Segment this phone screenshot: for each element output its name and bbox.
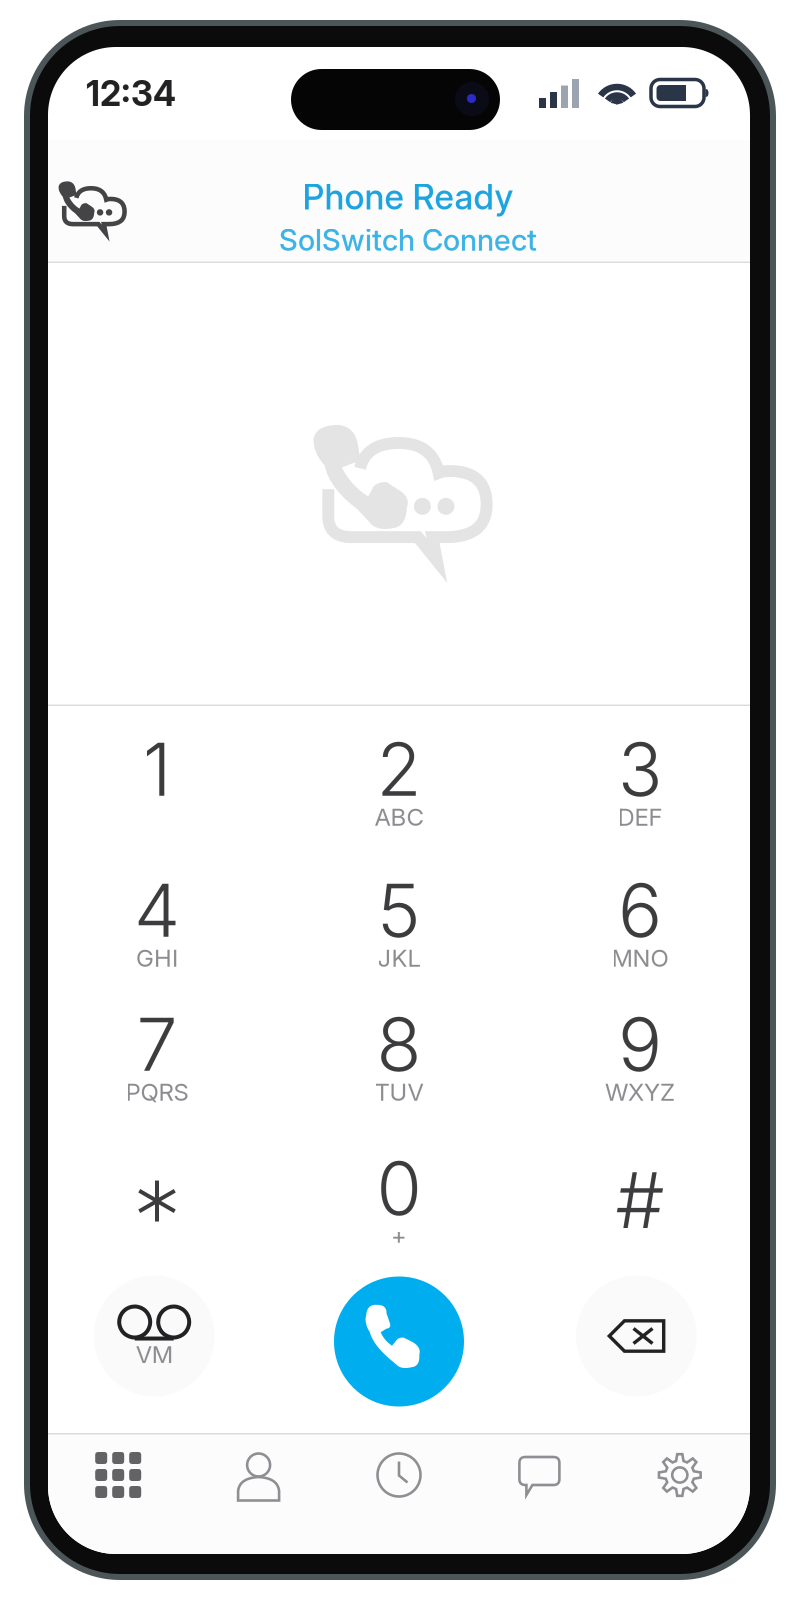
staticText: TUV [374, 1077, 423, 1106]
staticText: WXYZ [605, 1077, 675, 1106]
button[interactable] [48, 1123, 282, 1262]
button[interactable]: 3 [516, 706, 750, 845]
staticText: DEF [617, 802, 662, 831]
staticText: VM [136, 1340, 173, 1369]
staticText: GHI [136, 943, 178, 972]
button[interactable]: 1 [48, 706, 282, 845]
staticText: 3 [618, 725, 662, 813]
button[interactable]: Settings [610, 1433, 750, 1554]
button[interactable]: 9 [516, 984, 750, 1123]
button[interactable]: 6 [516, 845, 750, 984]
button[interactable]: 8 [282, 984, 516, 1123]
staticText: + [391, 1221, 407, 1250]
button[interactable]: 0 [282, 1123, 516, 1262]
button[interactable]: Call [334, 1276, 464, 1406]
button[interactable]: Keypad [48, 1433, 188, 1554]
button[interactable]: 7 [48, 984, 282, 1123]
staticText: 5 [377, 866, 421, 954]
staticText: 1 [142, 725, 171, 813]
staticText: SolSwitch Connect [279, 222, 537, 258]
button[interactable]: 5 [282, 845, 516, 984]
staticText: 8 [376, 1000, 421, 1088]
button[interactable]: Messages [469, 1433, 610, 1554]
staticText: 12:34 [86, 72, 176, 114]
button[interactable]: Contacts [188, 1433, 329, 1554]
button[interactable]: Voicemail [94, 1275, 215, 1396]
staticText: Phone Ready [302, 176, 513, 218]
button[interactable]: Recents [329, 1433, 469, 1554]
button[interactable]: SolSwitch [48, 140, 160, 263]
staticText: 6 [618, 866, 662, 954]
staticText: 0 [376, 1144, 421, 1232]
staticText: 7 [136, 1000, 177, 1088]
button[interactable]: # [516, 1123, 750, 1262]
button[interactable]: 4 [48, 845, 282, 984]
staticText: 2 [376, 725, 421, 813]
staticText: PQRS [125, 1077, 188, 1106]
staticText: ABC [374, 802, 423, 831]
staticText: 4 [134, 866, 180, 954]
button[interactable]: 2 [282, 706, 516, 845]
staticText: # [615, 1153, 664, 1247]
staticText: JKL [377, 943, 420, 972]
staticText: 9 [618, 1000, 662, 1088]
button[interactable]: Delete [576, 1275, 697, 1396]
staticText: MNO [611, 943, 668, 972]
